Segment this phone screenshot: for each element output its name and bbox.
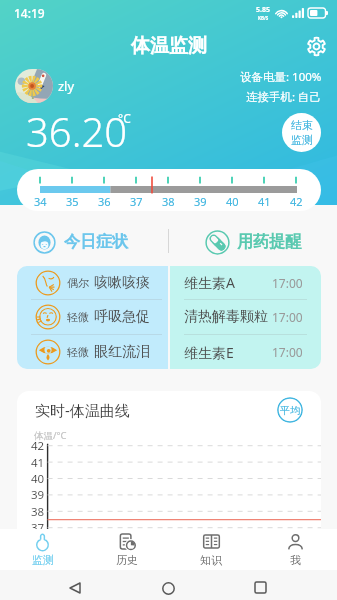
staticText: 维生素A	[184, 273, 235, 292]
button[interactable]: 知识	[169, 529, 253, 570]
staticText: 眼红流泪	[94, 343, 150, 361]
other: Home	[162, 582, 175, 595]
button[interactable]: Settings	[301, 31, 331, 61]
staticText: 维生素E	[184, 343, 234, 362]
button[interactable]: zly	[15, 69, 75, 103]
staticText: 5.85	[256, 5, 270, 15]
staticText: 36	[98, 194, 111, 209]
staticText: 17:00	[272, 344, 303, 360]
staticText: 17:00	[272, 275, 303, 291]
staticText: 38	[162, 194, 175, 209]
staticText: 17:00	[272, 309, 303, 325]
staticText: 连接手机: 自己	[246, 89, 322, 103]
staticText: 设备电量: 100%	[240, 69, 322, 85]
staticText: 结束	[291, 118, 313, 132]
button[interactable]: 今日症状	[33, 227, 128, 257]
staticText: zly	[58, 77, 75, 95]
staticText: 体温/°C	[34, 429, 67, 442]
staticText: 偶尔	[67, 276, 89, 290]
staticText: 38	[31, 504, 45, 519]
staticText: 41	[258, 194, 271, 209]
staticText: 今日症状	[64, 232, 128, 252]
staticText: 呼吸急促	[94, 308, 150, 326]
staticText: 清热解毒颗粒	[184, 308, 268, 326]
staticText: 监测	[32, 553, 54, 567]
staticText: 我	[290, 553, 301, 567]
staticText: 37	[31, 520, 45, 529]
staticText: 轻微	[67, 310, 89, 324]
staticText: 体温监测	[131, 34, 207, 58]
staticText: 39	[194, 194, 207, 209]
button[interactable]: 轻微	[35, 300, 168, 334]
button[interactable]: 轻微	[35, 335, 168, 369]
staticText: 42	[290, 194, 303, 209]
staticText: 历史	[116, 553, 138, 567]
button[interactable]: 维生素A	[184, 266, 303, 299]
button[interactable]: 清热解毒颗粒	[184, 300, 303, 334]
staticText: 40	[31, 471, 45, 486]
button[interactable]: 用药提醒	[205, 227, 301, 257]
staticText: 34	[34, 194, 47, 209]
staticText: 轻微	[67, 345, 89, 359]
button[interactable]: 我	[253, 529, 337, 570]
staticText: 实时-体温曲线	[35, 400, 130, 420]
staticText: 37	[130, 194, 143, 209]
staticText: 39	[31, 487, 45, 502]
other: Back	[69, 582, 81, 594]
staticText: 平均	[280, 404, 300, 417]
button[interactable]: 监测	[0, 529, 85, 570]
button[interactable]: 维生素E	[184, 335, 303, 369]
staticText: 知识	[200, 553, 222, 567]
button[interactable]: 历史	[85, 529, 169, 570]
staticText: 咳嗽咳痰	[94, 274, 150, 292]
button[interactable]: 偶尔	[35, 266, 168, 299]
staticText: 监测	[291, 133, 313, 147]
staticText: KB/S	[258, 15, 269, 21]
staticText: 42	[31, 438, 45, 453]
staticText: 36.20	[26, 104, 128, 158]
staticText: 用药提醒	[237, 232, 301, 252]
button[interactable]: 结束	[282, 113, 321, 152]
other: Recents	[255, 582, 266, 593]
staticText: °C	[118, 110, 131, 126]
button[interactable]: 平均	[277, 397, 303, 423]
staticText: 35	[66, 194, 79, 209]
staticText: 41	[31, 455, 45, 470]
staticText: 14:19	[14, 5, 45, 21]
staticText: 40	[226, 194, 239, 209]
